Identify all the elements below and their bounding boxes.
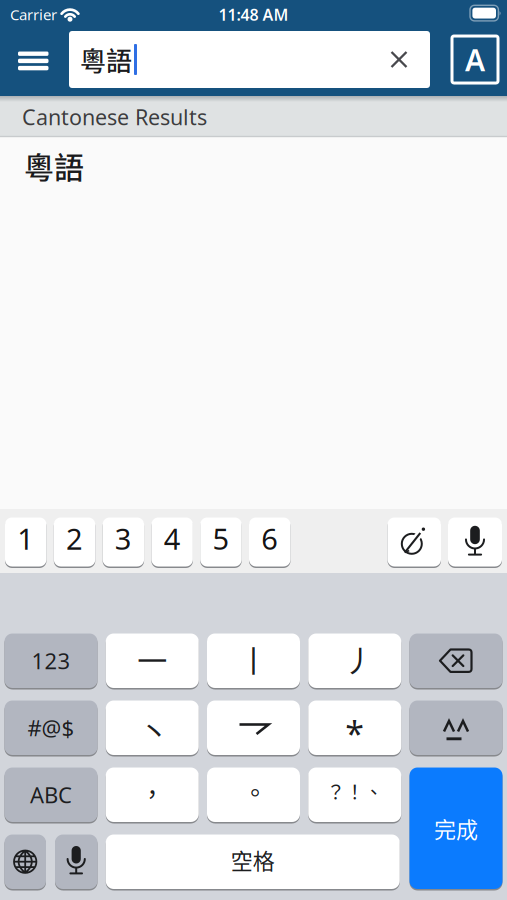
button[interactable] (8, 41, 60, 81)
staticText: #@$ (27, 713, 74, 743)
button[interactable]: 3 (103, 517, 144, 566)
button[interactable] (4, 834, 46, 889)
staticText: 11:48 AM (218, 4, 288, 25)
button[interactable]: 2 (54, 517, 95, 566)
button[interactable]: 丨 (207, 633, 300, 688)
staticText: 丿 (344, 637, 374, 680)
staticText: 空格 (231, 844, 275, 876)
staticText: 4 (164, 519, 181, 558)
staticText: 。 (242, 773, 267, 809)
staticText: Cantonese Results (22, 102, 207, 132)
staticText: 粵語 (24, 144, 84, 187)
staticText: 6 (261, 519, 278, 558)
staticText: ABC (30, 780, 72, 810)
button[interactable]: 6 (249, 517, 290, 566)
button[interactable]: 空格 (106, 834, 400, 889)
button[interactable]: 。 (207, 767, 300, 822)
button[interactable] (69, 31, 430, 88)
staticText: ？！、 (326, 777, 383, 805)
button[interactable] (448, 517, 502, 566)
staticText: ， (140, 775, 165, 811)
button[interactable] (409, 633, 502, 688)
staticText: * (345, 710, 364, 756)
button[interactable]: 一 (106, 633, 199, 688)
staticText: 5 (212, 519, 229, 558)
button[interactable]: A (452, 36, 498, 83)
button[interactable]: 123 (4, 633, 97, 688)
button[interactable]: ？！、 (308, 767, 401, 822)
button[interactable]: 4 (151, 517, 193, 566)
staticText: 3 (115, 519, 132, 558)
button[interactable]: 1 (5, 517, 46, 566)
button[interactable]: #@$ (4, 700, 97, 755)
button[interactable]: 粵語 (24, 145, 507, 185)
staticText: 丶 (139, 708, 169, 751)
staticText: 丨 (238, 637, 268, 680)
button[interactable]: 丶 (106, 700, 199, 755)
staticText: A (465, 39, 485, 80)
button[interactable]: 5 (200, 517, 242, 566)
button[interactable]: ABC (4, 767, 97, 822)
staticText: 2 (66, 519, 83, 558)
staticText: 123 (31, 646, 70, 676)
button[interactable] (387, 517, 441, 566)
button[interactable] (207, 700, 300, 755)
button[interactable]: 丿 (308, 633, 401, 688)
staticText: 一 (137, 637, 167, 680)
staticText: 粵語 (80, 41, 132, 78)
button[interactable]: ， (106, 767, 199, 822)
staticText: 完成 (434, 812, 478, 844)
staticText: Carrier (10, 4, 57, 25)
button[interactable] (381, 42, 417, 78)
button[interactable] (55, 834, 97, 889)
button[interactable]: 完成 (409, 767, 502, 889)
button[interactable] (409, 700, 502, 755)
button[interactable]: * (308, 700, 401, 755)
staticText: 1 (17, 519, 34, 558)
